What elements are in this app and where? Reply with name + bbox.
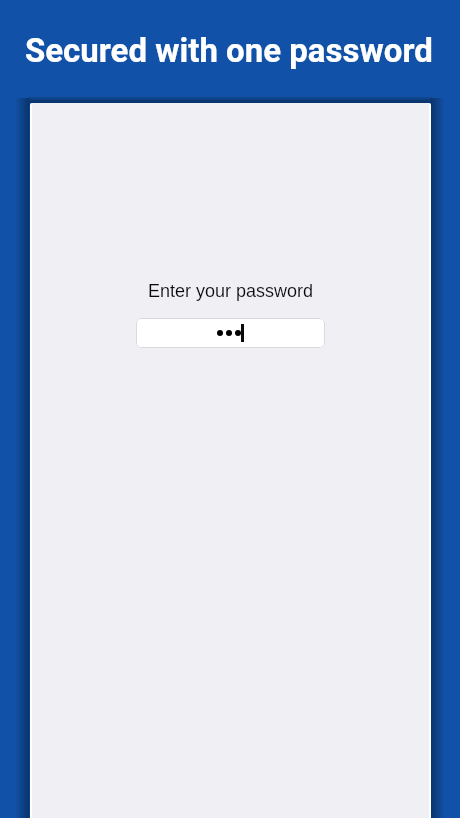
staticText: Enter your password	[148, 281, 314, 301]
button[interactable]	[136, 318, 325, 348]
staticText: Secured with one password	[25, 31, 433, 70]
